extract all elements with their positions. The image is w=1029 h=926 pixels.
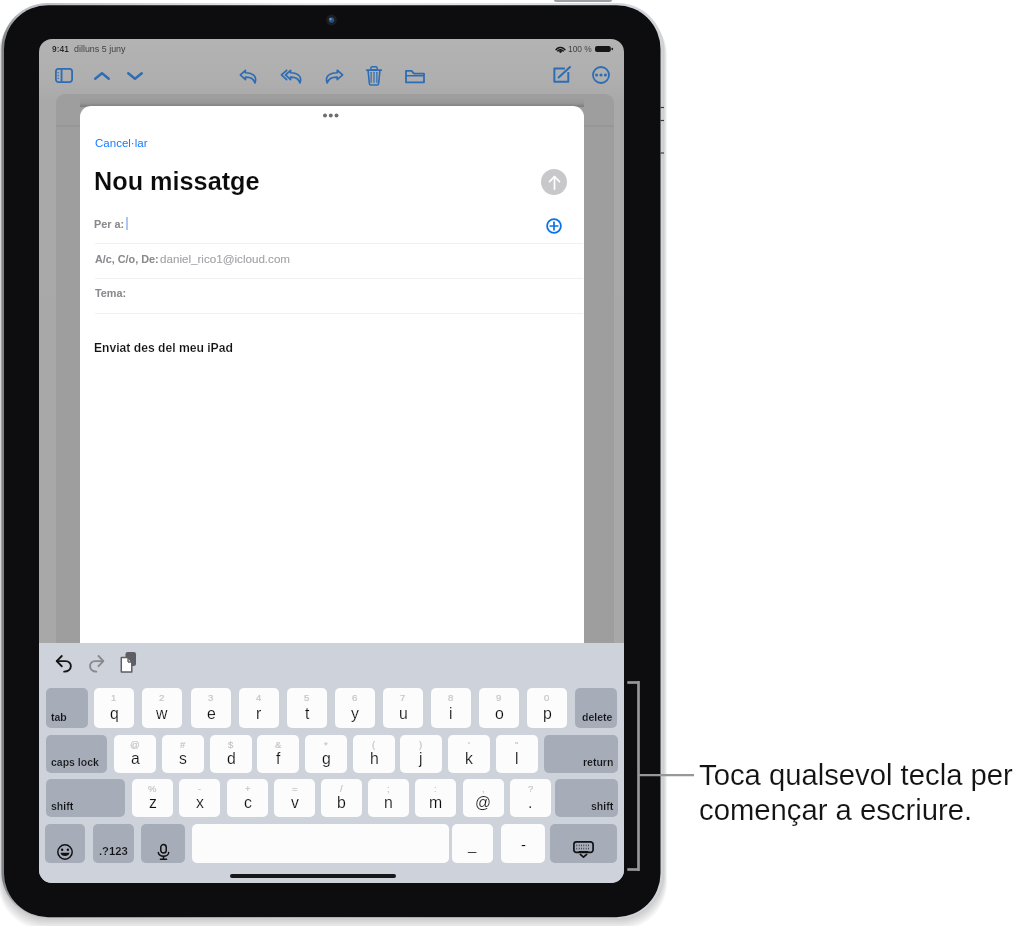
staticText: 1	[111, 692, 117, 703]
staticText: i	[449, 705, 453, 723]
button[interactable]: Previous message	[88, 66, 116, 86]
button[interactable]: 0	[527, 688, 567, 728]
staticText: Nou missatge	[94, 167, 260, 195]
button[interactable]: 2	[142, 688, 182, 728]
staticText: "	[515, 739, 519, 750]
button[interactable]: '	[448, 735, 490, 773]
button[interactable]: "	[496, 735, 538, 773]
button[interactable]: shift	[46, 779, 125, 817]
button[interactable]: )	[400, 735, 442, 773]
staticText: @	[475, 794, 492, 812]
staticText: )	[419, 739, 423, 750]
button[interactable]: -	[501, 824, 545, 863]
staticText: daniel_rico1@icloud.com	[160, 252, 291, 265]
button[interactable]: +	[227, 779, 268, 817]
button[interactable]: 7	[383, 688, 423, 728]
button[interactable]: Dictate	[141, 824, 185, 863]
staticText: *	[324, 739, 328, 750]
staticText: h	[370, 750, 379, 768]
button[interactable]	[80, 210, 584, 243]
button[interactable]	[80, 281, 584, 314]
staticText: 100 %	[568, 44, 592, 53]
button[interactable]: 6	[335, 688, 375, 728]
button[interactable]: Send	[541, 169, 567, 195]
staticText: shift	[591, 800, 614, 812]
staticText: ,	[482, 783, 485, 794]
staticText: -	[198, 783, 202, 794]
button[interactable]: Undo	[52, 651, 76, 675]
staticText: 6	[352, 692, 358, 703]
button[interactable]: 4	[239, 688, 279, 728]
staticText: e	[207, 705, 216, 723]
staticText: z	[149, 794, 157, 812]
button[interactable]: 9	[479, 688, 519, 728]
button[interactable]: *	[305, 735, 347, 773]
staticText: c	[244, 794, 252, 812]
button[interactable]: caps lock	[46, 735, 107, 773]
button[interactable]: &	[257, 735, 299, 773]
button[interactable]: Sidebar	[49, 62, 79, 89]
button[interactable]: shift	[555, 779, 618, 817]
staticText: ;	[387, 783, 390, 794]
staticText: a	[131, 750, 140, 768]
button[interactable]: (	[353, 735, 395, 773]
staticText: /	[340, 783, 343, 794]
button[interactable]: Add recipient	[546, 218, 562, 234]
button[interactable]: %	[132, 779, 173, 817]
button[interactable]: Move to folder	[399, 63, 431, 89]
staticText: p	[543, 705, 552, 723]
staticText: .	[528, 794, 533, 812]
button[interactable]: Delete	[360, 60, 388, 91]
staticText: Tema:	[95, 287, 127, 299]
staticText: :	[434, 783, 437, 794]
staticText: 4	[256, 692, 262, 703]
button[interactable]: -	[179, 779, 220, 817]
button[interactable]: :	[415, 779, 456, 817]
button[interactable]: Reply all	[275, 64, 308, 89]
staticText: x	[196, 794, 204, 812]
staticText: n	[384, 794, 393, 812]
button[interactable]: ;	[368, 779, 409, 817]
staticText: 3	[208, 692, 214, 703]
button[interactable]: 1	[94, 688, 134, 728]
staticText: b	[337, 794, 346, 812]
button[interactable]: Cancel·lar	[91, 133, 144, 146]
button[interactable]: Next message	[121, 66, 149, 86]
staticText: delete	[582, 711, 613, 723]
staticText: u	[399, 705, 408, 723]
button[interactable]: ,	[463, 779, 504, 817]
button[interactable]: New message	[547, 61, 576, 89]
button[interactable]: $	[210, 735, 252, 773]
button[interactable]: return	[544, 735, 618, 773]
button[interactable]	[80, 246, 584, 279]
staticText: 2	[159, 692, 165, 703]
staticText: q	[110, 705, 119, 723]
button[interactable]: #	[162, 735, 204, 773]
button[interactable]: Reply	[234, 64, 263, 89]
button[interactable]: Paste	[116, 650, 140, 674]
button[interactable]: delete	[575, 688, 617, 728]
button[interactable]: More	[586, 60, 616, 90]
button[interactable]: 8	[431, 688, 471, 728]
button[interactable]: Redo	[84, 651, 108, 675]
button[interactable]: Emoji	[45, 824, 85, 863]
staticText: A/c, C/o, De:	[95, 253, 159, 265]
button[interactable]: .?123	[93, 824, 134, 863]
staticText: $	[228, 739, 234, 750]
button[interactable]: /	[321, 779, 362, 817]
button[interactable]: ?	[510, 779, 551, 817]
button[interactable]: @	[114, 735, 156, 773]
button[interactable]: 3	[191, 688, 231, 728]
button[interactable]: tab	[46, 688, 88, 728]
staticText: w	[156, 705, 168, 723]
button[interactable]: _	[452, 824, 493, 863]
button[interactable]: =	[274, 779, 315, 817]
staticText: dilluns 5 juny	[74, 44, 126, 54]
staticText: j	[419, 750, 423, 768]
button[interactable]: 5	[287, 688, 327, 728]
button[interactable]: Hide keyboard	[550, 824, 617, 863]
button[interactable]: Forward	[319, 64, 349, 89]
staticText: l	[515, 750, 519, 768]
staticText: 0	[544, 692, 550, 703]
